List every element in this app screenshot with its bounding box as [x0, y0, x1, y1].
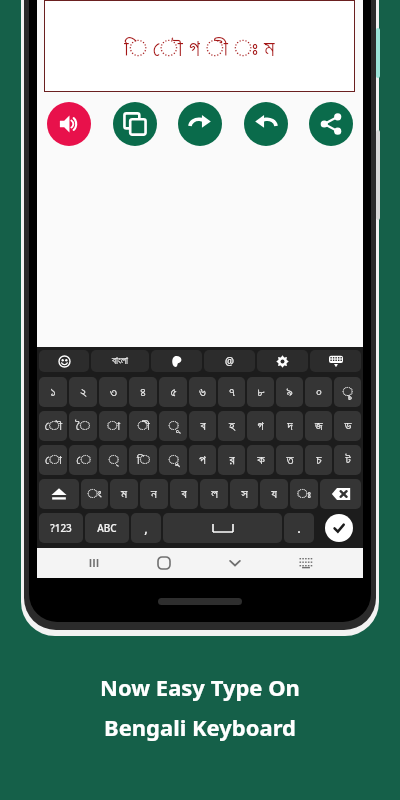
staticText: ব	[181, 488, 187, 501]
staticText: চ	[316, 454, 322, 467]
button[interactable]: ৫	[159, 377, 187, 407]
staticText: ল	[211, 488, 218, 501]
staticText: ৬	[199, 386, 206, 399]
button[interactable]: Undo	[244, 102, 288, 146]
button[interactable]: বাংলা	[91, 350, 149, 372]
button[interactable]: ৪	[129, 377, 157, 407]
button[interactable]: হ	[218, 411, 245, 441]
button[interactable]: ২	[69, 377, 97, 407]
button[interactable]: .	[284, 513, 314, 543]
button[interactable]: ABC	[85, 513, 129, 543]
staticText: ো	[45, 454, 62, 467]
button[interactable]: ৬	[189, 377, 216, 407]
button[interactable]: ০	[305, 377, 332, 407]
staticText: হ	[229, 420, 235, 433]
staticText: ৩	[110, 386, 117, 399]
button[interactable]: ে	[69, 445, 97, 475]
button[interactable]: ৩	[99, 377, 127, 407]
button[interactable]: ,	[131, 513, 161, 543]
button[interactable]: ু	[159, 445, 187, 475]
staticText: স	[241, 488, 248, 501]
staticText: গ	[257, 420, 264, 433]
button[interactable]: Shift	[39, 479, 79, 509]
button[interactable]	[151, 350, 202, 372]
button[interactable]: ক	[247, 445, 274, 475]
button[interactable]: ম	[110, 479, 138, 509]
button[interactable]: ব	[189, 411, 216, 441]
staticText: ৭	[229, 386, 235, 399]
staticText: ৌ	[45, 420, 62, 433]
button[interactable]: ঃ	[290, 479, 318, 509]
button[interactable]: র	[218, 445, 245, 475]
staticText: .	[297, 519, 301, 537]
button[interactable]: @	[204, 350, 255, 372]
button[interactable]: প	[189, 445, 216, 475]
staticText: ABC	[97, 521, 117, 535]
button[interactable]: ূ	[159, 411, 187, 441]
button[interactable]: ল	[200, 479, 228, 509]
staticText: ্	[108, 454, 119, 467]
staticText: ১	[50, 386, 56, 399]
staticText: ৈ	[76, 420, 90, 433]
button[interactable]: ি	[129, 445, 157, 475]
button[interactable]	[310, 350, 361, 372]
staticText: ৢ	[342, 386, 353, 399]
button[interactable]: Backspace	[320, 479, 361, 509]
button[interactable]: ী	[129, 411, 157, 441]
button[interactable]: Speak	[47, 102, 91, 146]
button[interactable]: Copy	[113, 102, 157, 146]
staticText: Bengali Keyboard	[104, 712, 296, 742]
button[interactable]: া	[99, 411, 127, 441]
staticText: ৯	[286, 386, 293, 399]
staticText: ০	[316, 386, 322, 399]
staticText: ,	[144, 519, 148, 537]
button[interactable]: ৈ	[69, 411, 97, 441]
button[interactable]: ড	[334, 411, 361, 441]
staticText: ং	[87, 488, 102, 501]
staticText: ে	[76, 454, 91, 467]
button[interactable]: য	[260, 479, 288, 509]
staticText: ম	[121, 488, 127, 501]
staticText: ন	[151, 488, 157, 501]
button[interactable]: Space	[163, 513, 282, 543]
button[interactable]: স	[230, 479, 258, 509]
button[interactable]	[257, 350, 308, 372]
staticText: প	[199, 454, 206, 467]
button[interactable]: Share	[309, 102, 353, 146]
staticText: ত	[286, 454, 294, 467]
button[interactable]: ৌ	[39, 411, 67, 441]
button[interactable]: ্	[99, 445, 127, 475]
button[interactable]: ৢ	[334, 377, 361, 407]
staticText: ৮	[257, 386, 265, 399]
button[interactable]: জ	[305, 411, 332, 441]
staticText: বাংলা	[112, 356, 128, 366]
button[interactable]: Enter	[325, 514, 353, 542]
button[interactable]: গ	[247, 411, 274, 441]
staticText: ি	[137, 454, 150, 467]
button[interactable]: ট	[334, 445, 361, 475]
button[interactable]: ত	[276, 445, 303, 475]
button[interactable]: ১	[39, 377, 67, 407]
button[interactable]: ো	[39, 445, 67, 475]
staticText: ৪	[140, 386, 146, 399]
button[interactable]: Redo	[178, 102, 222, 146]
button[interactable]: চ	[305, 445, 332, 475]
staticText: ব	[200, 420, 206, 433]
staticText: ট	[345, 454, 351, 467]
button[interactable]: ং	[81, 479, 108, 509]
button[interactable]: ৮	[247, 377, 274, 407]
staticText: দ	[287, 420, 293, 433]
staticText: র	[229, 454, 235, 467]
staticText: @	[225, 354, 234, 368]
button[interactable]: ব	[170, 479, 198, 509]
staticText: ূ	[168, 420, 179, 433]
staticText: জ	[315, 420, 323, 433]
staticText: ২	[80, 386, 87, 399]
button[interactable]: ন	[140, 479, 168, 509]
staticText: য	[271, 488, 277, 501]
button[interactable]: ?123	[39, 513, 83, 543]
button[interactable]	[39, 350, 89, 372]
button[interactable]: ৭	[218, 377, 245, 407]
button[interactable]: দ	[276, 411, 303, 441]
button[interactable]: ৯	[276, 377, 303, 407]
